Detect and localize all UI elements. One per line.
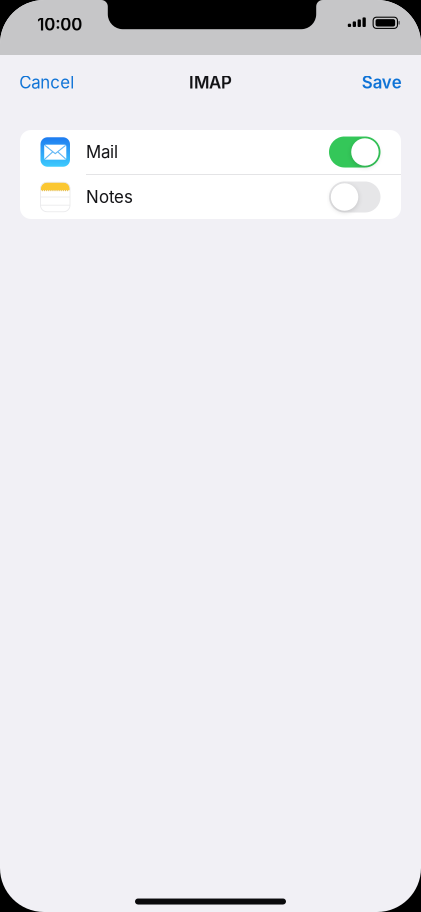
staticText: Save [362, 72, 402, 93]
staticText: IMAP [189, 72, 232, 93]
button[interactable]: Mail [20, 130, 401, 174]
staticText: Mail [86, 142, 118, 162]
button[interactable]: Save [362, 72, 402, 93]
staticText: Cancel [19, 72, 74, 93]
staticText: Notes [86, 187, 133, 207]
button[interactable]: Cancel [19, 72, 74, 93]
button[interactable]: Notes [20, 175, 401, 219]
staticText: 10:00 [37, 14, 82, 35]
